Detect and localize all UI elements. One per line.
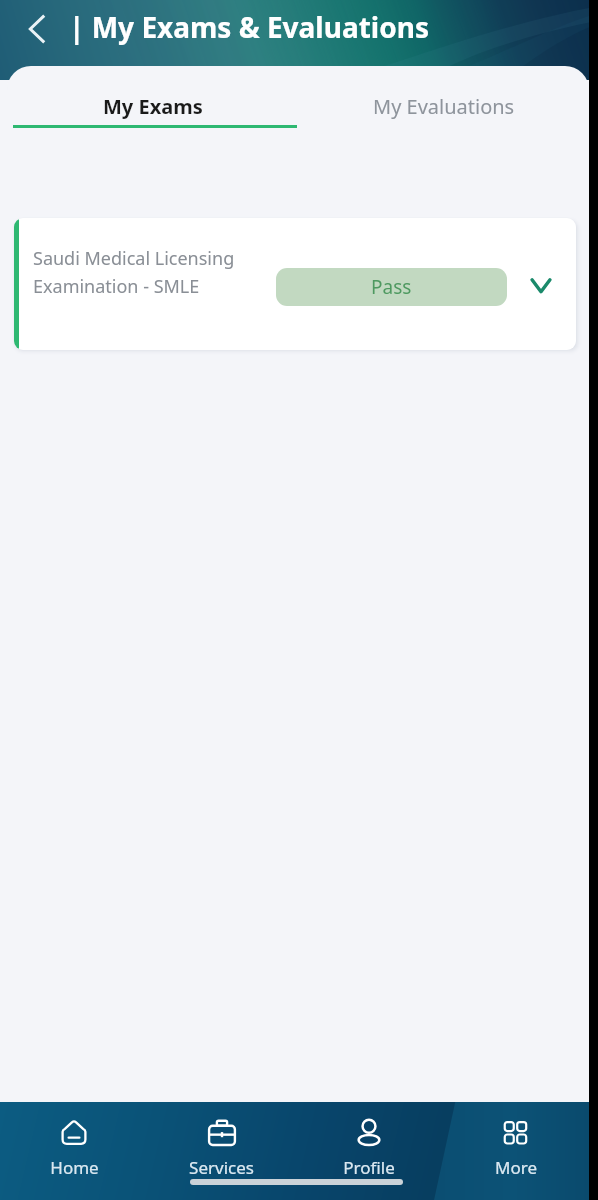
staticText: Pass — [371, 274, 412, 300]
staticText: My Evaluations — [373, 93, 515, 120]
button[interactable]: More — [442, 1102, 589, 1200]
button[interactable]: Pass — [276, 268, 507, 306]
button[interactable]: My Evaluations — [298, 66, 589, 128]
button[interactable]: Back — [14, 6, 60, 52]
staticText: | My Exams & Evaluations — [69, 8, 429, 46]
staticText: Profile — [343, 1156, 395, 1179]
staticText: Saudi Medical Licensing Examination - SM… — [33, 246, 235, 298]
button[interactable]: Saudi Medical Licensing Examination - SM… — [14, 218, 576, 350]
button[interactable]: Services — [148, 1102, 295, 1200]
staticText: Home — [50, 1156, 99, 1179]
button[interactable]: Expand — [526, 270, 556, 300]
button[interactable]: Home — [0, 1102, 148, 1200]
button[interactable]: My Exams — [7, 66, 298, 128]
staticText: Services — [189, 1156, 254, 1179]
staticText: My Exams — [103, 93, 203, 120]
staticText: More — [495, 1156, 537, 1179]
button[interactable]: Profile — [295, 1102, 442, 1200]
